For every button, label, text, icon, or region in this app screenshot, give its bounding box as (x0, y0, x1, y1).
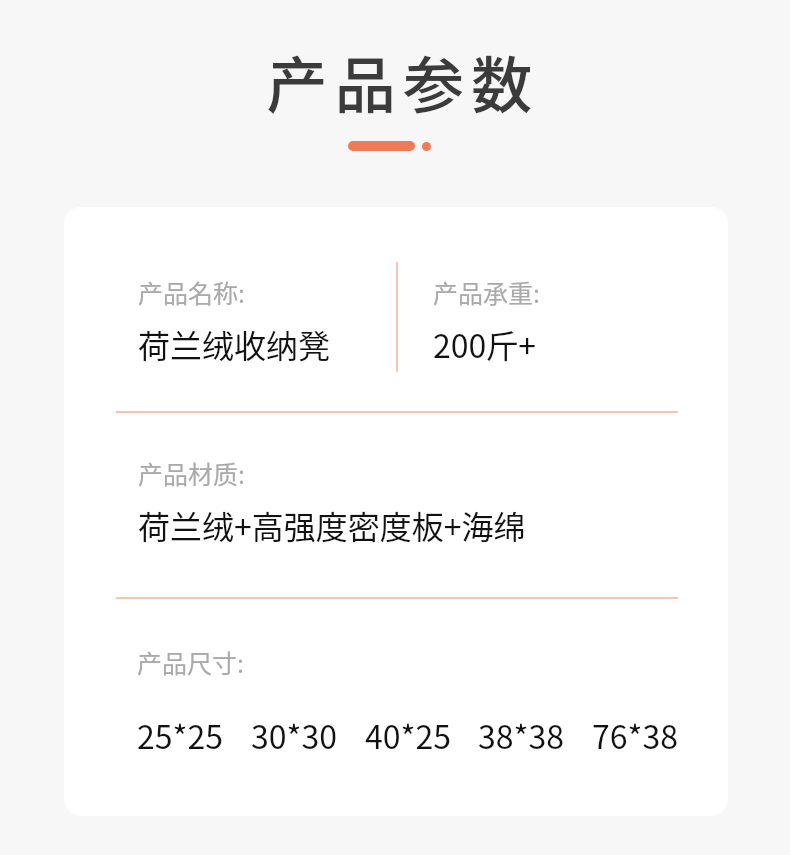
staticText: 200斤+ (433, 321, 537, 367)
staticText: 40*25 (365, 712, 451, 758)
staticText: 产品尺寸: (137, 644, 244, 680)
button[interactable]: 产品尺寸: (137, 644, 679, 758)
button[interactable]: 产品名称: (64, 207, 728, 816)
staticText: 产品材质: (138, 455, 245, 491)
button[interactable]: 产品材质: (138, 455, 638, 548)
staticText: 30*30 (251, 712, 337, 758)
button[interactable]: 产品名称: (138, 274, 378, 367)
staticText: 荷兰绒+高强度密度板+海绵 (138, 502, 526, 548)
other: Section accent (0, 141, 784, 151)
staticText: 25*25 (137, 712, 223, 758)
staticText: 产品承重: (433, 274, 540, 310)
staticText: 产品参数 (8, 37, 790, 125)
staticText: 产品名称: (138, 274, 245, 310)
staticText: 76*38 (592, 712, 678, 758)
staticText: 荷兰绒收纳凳 (138, 321, 331, 367)
staticText: 38*38 (478, 712, 564, 758)
button[interactable]: 产品承重: (433, 274, 673, 367)
